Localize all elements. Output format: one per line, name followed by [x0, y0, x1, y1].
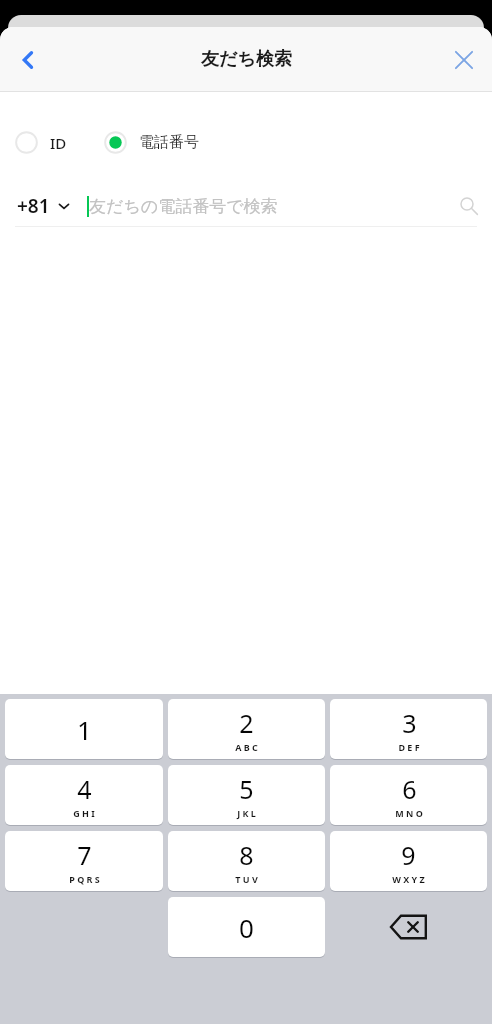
staticText: 7: [77, 838, 92, 872]
staticText: A B C: [235, 741, 258, 753]
button[interactable]: 0: [168, 897, 325, 957]
button[interactable]: 4: [5, 765, 163, 825]
staticText: P Q R S: [69, 873, 100, 885]
staticText: 2: [239, 706, 254, 740]
button[interactable]: Search: [446, 186, 492, 226]
button[interactable]: Delete: [330, 897, 487, 957]
button[interactable]: 電話番号: [104, 131, 199, 154]
staticText: 友だち検索: [201, 48, 292, 71]
button[interactable]: 5: [168, 765, 325, 825]
button[interactable]: 7: [5, 831, 163, 891]
staticText: 電話番号: [139, 133, 199, 152]
button[interactable]: ID: [15, 131, 67, 154]
staticText: 8: [239, 838, 254, 872]
staticText: 友だちの電話番号で検索: [89, 196, 278, 217]
staticText: D E F: [398, 741, 420, 753]
staticText: 9: [401, 838, 416, 872]
staticText: T U V: [235, 873, 258, 885]
staticText: ID: [50, 133, 67, 153]
staticText: M N O: [395, 807, 423, 819]
button[interactable]: 3: [330, 699, 487, 759]
button[interactable]: Back: [0, 27, 56, 92]
button[interactable]: 1: [5, 699, 163, 759]
button[interactable]: 9: [330, 831, 487, 891]
button[interactable]: +81: [17, 193, 70, 219]
staticText: 6: [402, 772, 417, 806]
staticText: 4: [77, 772, 92, 806]
staticText: 0: [239, 910, 254, 945]
button[interactable]: 8: [168, 831, 325, 891]
staticText: J K L: [237, 807, 256, 819]
staticText: G H I: [73, 807, 95, 819]
button[interactable]: Close: [436, 27, 492, 92]
staticText: +81: [17, 193, 50, 219]
staticText: W X Y Z: [392, 873, 425, 885]
staticText: 5: [239, 772, 254, 806]
button[interactable]: 2: [168, 699, 325, 759]
staticText: 3: [402, 706, 417, 740]
button[interactable]: 6: [330, 765, 487, 825]
staticText: 1: [77, 712, 92, 747]
